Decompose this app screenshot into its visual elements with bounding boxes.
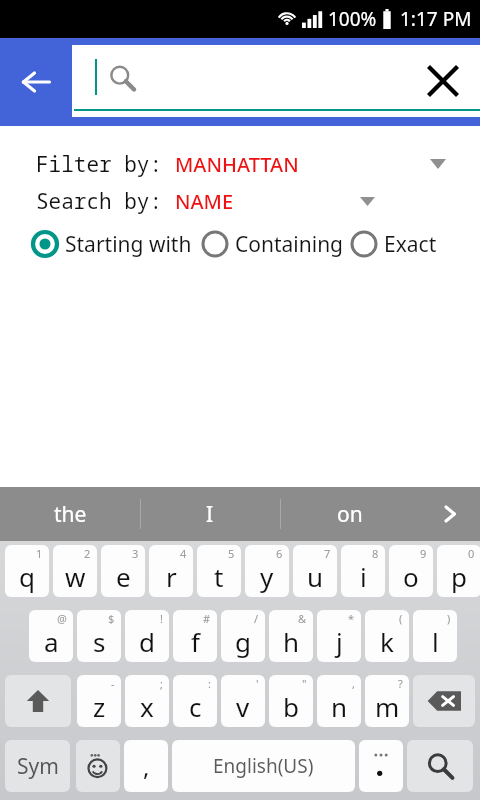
button[interactable]: ' [221, 675, 265, 727]
staticText: y [260, 559, 274, 594]
staticText: 0 [468, 546, 475, 561]
staticText: , [143, 750, 150, 783]
staticText: j [336, 624, 343, 659]
button[interactable]: the [0, 487, 140, 541]
button[interactable]: ( [365, 610, 409, 662]
button[interactable]: 4 [149, 545, 193, 597]
button[interactable]: $ [77, 610, 121, 662]
staticText: ! [160, 611, 163, 626]
button[interactable]: Clear [72, 45, 480, 117]
button[interactable]: Search [407, 740, 473, 792]
staticText: g [235, 624, 251, 659]
button[interactable]: 2 [53, 545, 97, 597]
button[interactable]: , [317, 675, 361, 727]
button[interactable]: Sym [5, 740, 70, 792]
staticText: k [380, 624, 394, 659]
staticText: z [93, 689, 106, 724]
staticText: # [203, 611, 211, 626]
button[interactable]: Back [0, 38, 72, 126]
staticText: 7 [324, 546, 331, 561]
button[interactable]: ) [413, 610, 457, 662]
staticText: MANHATTAN [175, 151, 299, 178]
button[interactable]: 7 [293, 545, 337, 597]
staticText: * [348, 611, 355, 626]
staticText: 4 [180, 546, 187, 561]
staticText: ) [447, 611, 451, 626]
button[interactable]: ? [365, 675, 409, 727]
button[interactable]: 6 [245, 545, 289, 597]
staticText: r [166, 559, 177, 594]
button[interactable]: 9 [389, 545, 433, 597]
staticText: a [44, 624, 59, 659]
staticText: u [307, 559, 324, 594]
button[interactable]: ; [125, 675, 169, 727]
button[interactable]: Containing [200, 222, 344, 266]
button[interactable]: Shift [5, 675, 71, 727]
button[interactable]: 0 [437, 545, 480, 597]
button[interactable]: Period [359, 740, 403, 792]
staticText: 1 [36, 546, 43, 561]
staticText: ; [160, 676, 163, 691]
staticText: ( [399, 611, 403, 626]
button[interactable]: 8 [341, 545, 385, 597]
staticText: : [208, 676, 211, 691]
staticText: c [189, 689, 202, 724]
staticText: , [352, 676, 355, 691]
staticText: @ [57, 611, 67, 626]
button[interactable]: 1 [5, 545, 49, 597]
button[interactable]: More suggestions [420, 487, 480, 541]
staticText: 9 [420, 546, 427, 561]
staticText: 8 [372, 546, 379, 561]
button[interactable]: Exact [349, 222, 437, 266]
staticText: Containing [235, 230, 344, 259]
button[interactable]: : [173, 675, 217, 727]
staticText: / [254, 611, 259, 626]
staticText: Exact [384, 230, 437, 259]
staticText: ? [398, 676, 403, 691]
staticText: 6 [276, 546, 283, 561]
button[interactable]: # [173, 610, 217, 662]
staticText: w [65, 559, 86, 594]
staticText: Filter by: [36, 150, 175, 179]
button[interactable]: @ [29, 610, 73, 662]
staticText: & [298, 611, 307, 626]
staticText: l [432, 624, 439, 659]
staticText: ' [256, 676, 259, 691]
staticText: i [360, 559, 367, 594]
button[interactable]: Emoji [76, 740, 120, 792]
button[interactable]: I [140, 487, 280, 541]
staticText: I [206, 500, 214, 529]
staticText: 100% [328, 6, 377, 32]
button[interactable]: / [221, 610, 265, 662]
button[interactable]: 5 [197, 545, 241, 597]
staticText: English(US) [213, 753, 314, 779]
button[interactable]: 3 [101, 545, 145, 597]
button[interactable]: & [269, 610, 313, 662]
button[interactable]: , [124, 740, 168, 792]
staticText: 2 [84, 546, 91, 561]
staticText: " [302, 676, 307, 691]
staticText: s [93, 624, 106, 659]
staticText: n [331, 689, 348, 724]
staticText: o [403, 559, 419, 594]
button[interactable]: Starting with [30, 222, 192, 266]
staticText: m [375, 689, 400, 724]
button[interactable]: Search by: [0, 182, 480, 220]
button[interactable]: Space [172, 740, 355, 792]
staticText: NAME [175, 188, 234, 215]
button[interactable]: Backspace [413, 675, 475, 727]
button[interactable]: * [317, 610, 361, 662]
staticText: x [140, 689, 154, 724]
button[interactable]: - [77, 675, 121, 727]
staticText: t [214, 559, 224, 594]
staticText: e [116, 559, 131, 594]
staticText: 5 [228, 546, 235, 561]
button[interactable]: Clear [416, 54, 470, 108]
staticText: v [236, 689, 250, 724]
button[interactable]: ! [125, 610, 169, 662]
staticText: p [451, 559, 467, 594]
button[interactable]: " [269, 675, 313, 727]
button[interactable]: Filter by: [0, 145, 480, 183]
staticText: b [283, 689, 299, 724]
button[interactable]: on [280, 487, 420, 541]
